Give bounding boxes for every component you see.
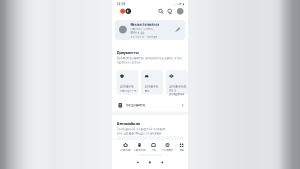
staticText: Платежи — [162, 148, 173, 151]
staticText: Документы — [116, 50, 138, 55]
staticText: во о рождении — [169, 89, 184, 96]
staticText: авто — [145, 89, 150, 92]
button[interactable]: Последние приложения — [137, 162, 139, 163]
button[interactable]: Максим Загмайлов — [115, 20, 185, 40]
button[interactable]: Главная — [118, 143, 132, 152]
button[interactable]: Ещё — [174, 143, 188, 152]
staticText: ИНН и др. — [130, 31, 145, 34]
button[interactable]: Поиск — [159, 9, 163, 13]
staticText: Максим Загмайлов — [130, 23, 159, 26]
button[interactable]: добавить — [116, 70, 138, 94]
staticText: 35 000 ₽ · Бонусы — [130, 35, 157, 38]
staticText: Автомобили — [116, 121, 140, 126]
staticText: Паспорт, СНИЛС, — [130, 27, 154, 30]
staticText: ⌁ ∿ ◤ ▮ — [173, 3, 183, 6]
button[interactable]: Чат — [168, 9, 172, 13]
staticText: Сообщим об очередной поверке — [116, 127, 164, 131]
staticText: добавить — [145, 85, 158, 88]
staticText: Добавьте документы, которые под рукой, и… — [116, 56, 181, 60]
button[interactable]: добавить св- — [166, 70, 188, 94]
button[interactable]: Платежи — [160, 143, 174, 152]
staticText: Главная — [120, 148, 131, 151]
button[interactable]: Все документы — [116, 102, 183, 109]
button[interactable]: Назад — [161, 161, 163, 164]
staticText: добавить — [120, 85, 133, 88]
button[interactable]: Главный экран — [149, 161, 151, 163]
staticText: Чат — [151, 148, 155, 151]
staticText: Все документы — [126, 103, 145, 107]
staticText: добавить св- — [169, 85, 187, 88]
staticText: или штрафах ГИБДД с Госуслугами — [116, 132, 161, 135]
staticText: Сервисы — [133, 148, 145, 151]
button[interactable]: Чат — [146, 143, 160, 152]
staticText: берёте их с собой — [116, 61, 140, 64]
staticText: 14:38 — [116, 2, 125, 6]
button[interactable]: Сервисы — [132, 143, 146, 152]
button[interactable]: Профиль — [177, 8, 183, 15]
staticText: паспорт РФ — [120, 89, 136, 92]
button[interactable]: добавить — [141, 70, 163, 94]
staticText: Ещё — [179, 148, 183, 151]
